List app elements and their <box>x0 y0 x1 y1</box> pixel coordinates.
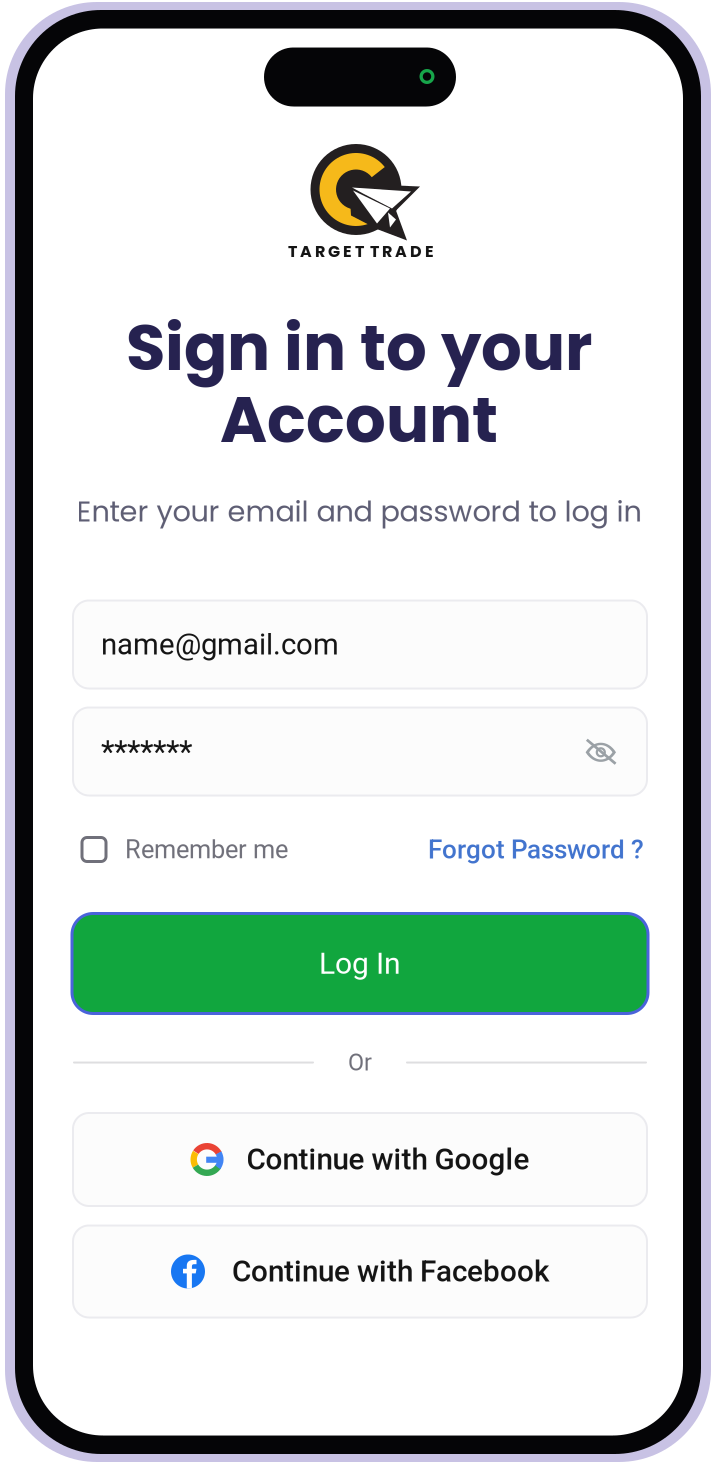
staticText: Remember me <box>125 835 288 864</box>
button[interactable]: Forgot Password ? <box>314 827 644 871</box>
staticText: T A R G E T T R A D E <box>288 240 434 263</box>
button[interactable]: Continue with Facebook <box>73 1225 647 1317</box>
staticText: ******* <box>101 733 192 770</box>
staticText: Or <box>348 1049 372 1076</box>
staticText: Forgot Password ? <box>428 834 644 865</box>
staticText: name@gmail.com <box>101 627 339 662</box>
button[interactable]: Log In <box>72 913 648 1013</box>
staticText: Enter your email and password to log in <box>76 491 641 532</box>
staticText: Sign in to your <box>126 303 592 392</box>
button[interactable]: Continue with Google <box>73 1113 647 1206</box>
staticText: Continue with Google <box>246 1142 529 1177</box>
staticText: Account <box>220 375 498 464</box>
staticText: Continue with Facebook <box>232 1254 549 1289</box>
staticText: Log In <box>319 946 401 981</box>
button[interactable]: Remember me <box>82 827 382 871</box>
